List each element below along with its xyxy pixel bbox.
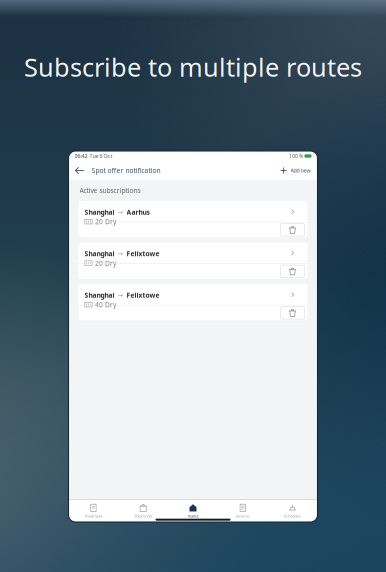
staticText: Active subscriptions bbox=[79, 186, 140, 195]
staticText: Felixtowe bbox=[126, 249, 159, 258]
staticText: 20 Dry bbox=[95, 259, 116, 268]
staticText: 40 Dry bbox=[95, 300, 116, 309]
button[interactable]: Book Spot bbox=[68, 504, 118, 519]
button[interactable]: Invoices bbox=[218, 504, 268, 519]
staticText: 100 % bbox=[289, 152, 303, 160]
button[interactable]: Add new bbox=[277, 162, 313, 179]
staticText: Invoices bbox=[236, 513, 250, 519]
button[interactable]: Shanghai bbox=[78, 201, 307, 222]
staticText: Shanghai bbox=[84, 291, 114, 300]
staticText: Aarhus bbox=[126, 208, 149, 217]
button[interactable]: Delete subscription bbox=[280, 224, 304, 236]
staticText: 06:42 bbox=[74, 152, 87, 160]
button[interactable]: Delete subscription bbox=[280, 307, 304, 319]
button[interactable]: Shipments bbox=[118, 504, 168, 519]
staticText: Spot offer notification bbox=[91, 166, 160, 175]
button[interactable]: Back bbox=[71, 161, 87, 180]
staticText: Home bbox=[187, 513, 198, 519]
button[interactable]: Schedules bbox=[268, 504, 317, 519]
staticText: Subscribe to multiple routes bbox=[24, 50, 362, 84]
staticText: Felixtowe bbox=[126, 291, 159, 300]
staticText: → bbox=[117, 291, 123, 299]
button[interactable]: Delete subscription bbox=[280, 265, 304, 278]
staticText: Tue 6 Oct bbox=[87, 152, 112, 160]
staticText: Book Spot bbox=[85, 513, 102, 519]
staticText: → bbox=[117, 250, 123, 258]
staticText: 20 Dry bbox=[95, 217, 116, 226]
staticText: Shanghai bbox=[84, 249, 114, 258]
staticText: Schedules bbox=[284, 513, 301, 519]
button[interactable]: Shanghai bbox=[78, 242, 307, 263]
button[interactable]: Home bbox=[168, 504, 218, 519]
staticText: Shipments bbox=[134, 513, 152, 519]
button[interactable]: Shanghai bbox=[78, 284, 307, 305]
staticText: Add new bbox=[290, 167, 310, 174]
staticText: → bbox=[117, 208, 123, 216]
staticText: Shanghai bbox=[84, 208, 114, 217]
